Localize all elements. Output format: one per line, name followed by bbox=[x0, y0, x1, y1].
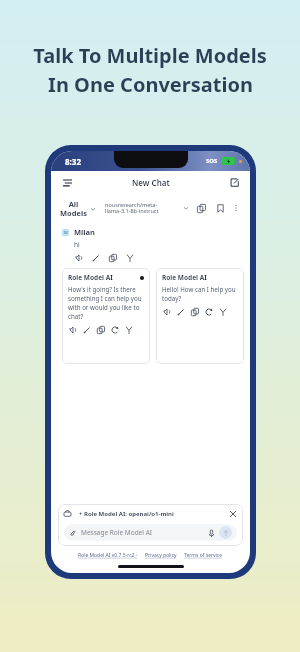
button[interactable]: Copy bbox=[96, 325, 106, 335]
button[interactable]: Branch bbox=[218, 307, 228, 317]
button[interactable]: Edit bbox=[176, 307, 186, 317]
staticText: New Chat bbox=[132, 177, 170, 188]
button[interactable]: nousresearch/meta- llama-3.1-8b-instruct bbox=[105, 201, 189, 215]
button[interactable]: Read aloud bbox=[68, 325, 78, 335]
button[interactable]: Message Role Model AI bbox=[64, 524, 237, 541]
button[interactable]: Edit bbox=[82, 325, 92, 335]
button[interactable]: Read aloud bbox=[162, 307, 172, 317]
staticText: In One Conversation bbox=[48, 71, 253, 98]
staticText: Talk To Multiple Models bbox=[33, 42, 267, 69]
button[interactable]: Close bbox=[228, 509, 237, 518]
button[interactable]: Copy bbox=[108, 253, 118, 263]
staticText: Hello! How can I help you today? bbox=[162, 285, 238, 303]
button[interactable]: New chat bbox=[227, 175, 241, 189]
staticText: All Models bbox=[60, 199, 87, 218]
button[interactable]: Voice input bbox=[206, 528, 216, 538]
button[interactable]: Role Model AI v0.7.5-rc2 - bbox=[78, 552, 138, 559]
button[interactable]: Send bbox=[219, 526, 232, 539]
staticText: Milan bbox=[74, 227, 95, 237]
button[interactable]: Copy bbox=[190, 307, 200, 317]
button[interactable]: More bbox=[231, 203, 241, 213]
staticText: nousresearch/meta- llama-3.1-8b-instruct bbox=[105, 201, 183, 215]
button[interactable]: All Models bbox=[60, 199, 98, 218]
staticText: SOS bbox=[206, 157, 218, 165]
button[interactable]: Branch bbox=[124, 325, 134, 335]
staticText: Message Role Model AI bbox=[81, 528, 153, 537]
button[interactable]: Regenerate bbox=[204, 307, 214, 317]
staticText: How's it going? Is there something I can… bbox=[68, 285, 144, 321]
staticText: + Role Model AI: openai/o1-mini bbox=[79, 510, 174, 518]
staticText: hi bbox=[74, 240, 80, 249]
button[interactable]: Privacy policy bbox=[145, 552, 177, 559]
button[interactable]: Terms of service bbox=[184, 552, 223, 559]
button[interactable]: Bookmark bbox=[214, 202, 226, 214]
button[interactable]: Menu bbox=[60, 175, 74, 189]
staticText: Role Model AI bbox=[162, 273, 207, 282]
button[interactable]: Role Model AI bbox=[156, 268, 244, 364]
button[interactable]: Read aloud bbox=[74, 253, 84, 263]
staticText: M bbox=[64, 230, 68, 235]
staticText: Role Model AI bbox=[68, 273, 113, 282]
button[interactable]: Regenerate bbox=[110, 325, 120, 335]
button[interactable]: Role Model AI bbox=[62, 268, 150, 364]
staticText: 8:32 bbox=[65, 156, 81, 167]
button[interactable]: Branch bbox=[125, 253, 135, 263]
button[interactable]: Edit bbox=[91, 253, 101, 263]
button[interactable]: Copy bbox=[195, 202, 207, 214]
